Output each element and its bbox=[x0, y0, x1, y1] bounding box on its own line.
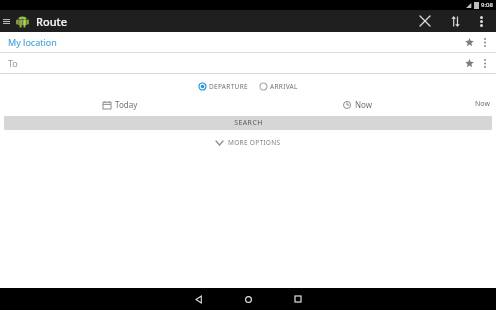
button[interactable]: Menu bbox=[0, 10, 12, 32]
button[interactable]: More options bbox=[470, 10, 492, 32]
staticText: Now bbox=[355, 99, 373, 110]
button[interactable]: Today bbox=[100, 97, 141, 112]
button[interactable]: Now bbox=[340, 97, 376, 112]
button[interactable]: Favorite bbox=[460, 32, 478, 52]
button[interactable]: ARRIVAL bbox=[258, 82, 300, 91]
staticText: DEPARTURE bbox=[209, 82, 248, 91]
staticText: SEARCH bbox=[234, 118, 263, 128]
staticText: 9:08 bbox=[481, 1, 493, 9]
button[interactable]: DEPARTURE bbox=[197, 82, 250, 91]
button[interactable]: Favorite bbox=[460, 53, 478, 73]
button[interactable]: My location bbox=[8, 36, 57, 48]
button[interactable]: Swap bbox=[440, 10, 470, 32]
button[interactable]: SEARCH bbox=[4, 116, 492, 130]
staticText: Route bbox=[36, 14, 68, 29]
button[interactable]: Field options bbox=[478, 53, 492, 73]
button[interactable]: Field options bbox=[478, 32, 492, 52]
button[interactable]: App icon bbox=[12, 10, 32, 32]
button[interactable]: Recents bbox=[273, 288, 323, 310]
button[interactable]: Home bbox=[223, 288, 273, 310]
staticText: ARRIVAL bbox=[270, 82, 298, 91]
button[interactable]: To bbox=[8, 57, 18, 69]
staticText: Today bbox=[115, 99, 138, 110]
button[interactable]: Now bbox=[475, 99, 490, 109]
button[interactable]: Close bbox=[410, 10, 440, 32]
button[interactable]: Back bbox=[173, 288, 223, 310]
staticText: MORE OPTIONS bbox=[228, 138, 281, 147]
button[interactable]: MORE OPTIONS bbox=[212, 136, 285, 149]
